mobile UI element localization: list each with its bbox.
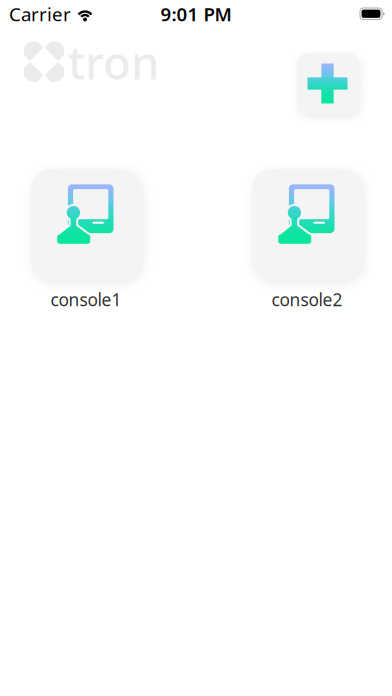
button[interactable]: console1 [31, 169, 141, 280]
staticText: console1 [50, 288, 121, 311]
staticText: Carrier [9, 2, 71, 26]
staticText: tron [68, 32, 159, 92]
staticText: 9:01 PM [160, 2, 231, 26]
button[interactable]: Add console [297, 53, 358, 114]
button[interactable]: console2 [252, 169, 362, 280]
staticText: console2 [271, 288, 342, 311]
